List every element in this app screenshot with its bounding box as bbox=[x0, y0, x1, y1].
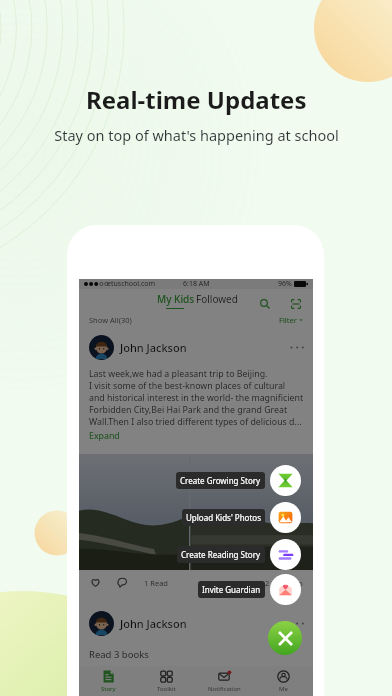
staticText: Real-time Updates bbox=[86, 83, 307, 116]
button[interactable]: Scan code bbox=[289, 297, 303, 311]
button[interactable]: Close actions menu bbox=[268, 621, 302, 655]
staticText: Last week,we had a pleasant trip to Beij… bbox=[89, 368, 268, 380]
staticText: My Kids bbox=[157, 292, 195, 306]
staticText: and historical interest in the world- th… bbox=[89, 392, 303, 404]
button[interactable]: More options bbox=[290, 345, 303, 350]
staticText: Wall.Then I also tried different types o… bbox=[89, 416, 302, 428]
button[interactable]: Comment bbox=[116, 576, 129, 589]
button[interactable]: Filter bbox=[279, 315, 303, 325]
staticText: Create Growing Story bbox=[180, 475, 261, 486]
button[interactable]: Me bbox=[254, 666, 313, 696]
staticText: Invite Guardian bbox=[202, 584, 261, 595]
staticText: Notification bbox=[208, 685, 241, 693]
staticText: Stay on top of what's happening at schoo… bbox=[54, 125, 339, 145]
staticText: Me bbox=[279, 685, 288, 693]
button[interactable]: My Kids bbox=[157, 292, 195, 309]
button[interactable]: Create Reading Story bbox=[177, 539, 301, 570]
button[interactable]: Upload Kids' Photos bbox=[182, 502, 301, 533]
staticText: Story bbox=[101, 685, 116, 693]
staticText: Forbidden City,Bei Hai Park and the gran… bbox=[89, 404, 288, 416]
button[interactable]: Like bbox=[89, 576, 102, 589]
staticText: John Jackson bbox=[120, 616, 187, 631]
staticText: I visit some of the best-known places of… bbox=[89, 380, 286, 392]
staticText: Toolkit bbox=[157, 685, 176, 693]
button[interactable]: Search bbox=[258, 297, 272, 311]
staticText: 2 days ago bbox=[265, 578, 303, 588]
button[interactable]: More options bbox=[290, 621, 303, 626]
button[interactable]: Invite Guardian bbox=[198, 574, 301, 605]
button[interactable]: Notification bbox=[195, 666, 254, 696]
button[interactable]: Expand bbox=[89, 430, 120, 442]
staticText: Show All(30) bbox=[89, 315, 132, 325]
staticText: Create Reading Story bbox=[181, 549, 261, 560]
button[interactable]: Followed bbox=[196, 292, 238, 306]
staticText: etuschool.com bbox=[107, 279, 156, 289]
staticText: Filter bbox=[279, 315, 297, 325]
staticText: John Jackson bbox=[120, 340, 187, 355]
button[interactable]: Toolkit bbox=[137, 666, 195, 696]
staticText: Followed bbox=[196, 292, 238, 306]
staticText: Expand bbox=[89, 430, 120, 442]
staticText: Read 3 books bbox=[89, 648, 149, 661]
staticText: 6:18 AM bbox=[183, 279, 210, 289]
staticText: Upload Kids' Photos bbox=[186, 512, 261, 523]
staticText: 1 Read bbox=[144, 578, 168, 588]
staticText: 96% bbox=[278, 279, 292, 289]
button[interactable]: Create Growing Story bbox=[176, 465, 301, 496]
button[interactable]: Story bbox=[79, 666, 137, 696]
